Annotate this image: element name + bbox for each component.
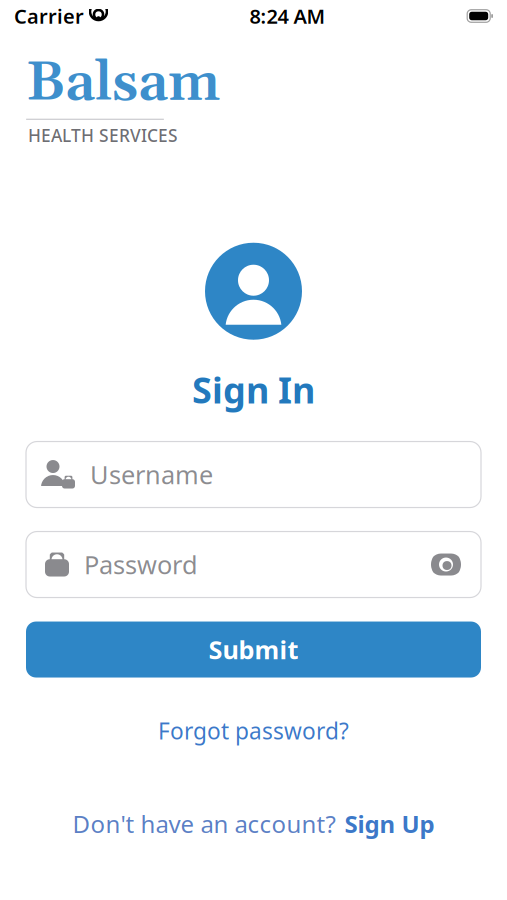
staticText: Password: [84, 548, 198, 581]
button[interactable]: Don't have an account?: [62, 800, 444, 847]
staticText: 8:24 AM: [250, 3, 326, 29]
staticText: Username: [90, 458, 213, 491]
staticText: Sign Up: [344, 808, 434, 839]
staticText: Balsam: [26, 50, 220, 118]
staticText: Don't have an account?: [72, 808, 335, 839]
button[interactable]: Submit: [26, 621, 481, 677]
staticText: Carrier: [14, 3, 84, 29]
staticText: HEALTH SERVICES: [28, 124, 178, 147]
staticText: Submit: [208, 633, 298, 666]
button[interactable]: Password: [26, 531, 481, 597]
button[interactable]: Show password: [421, 552, 463, 576]
staticText: Forgot password?: [158, 715, 349, 746]
staticText: Sign In: [192, 366, 315, 413]
button[interactable]: Forgot password?: [148, 707, 359, 754]
button[interactable]: Username: [26, 441, 481, 507]
